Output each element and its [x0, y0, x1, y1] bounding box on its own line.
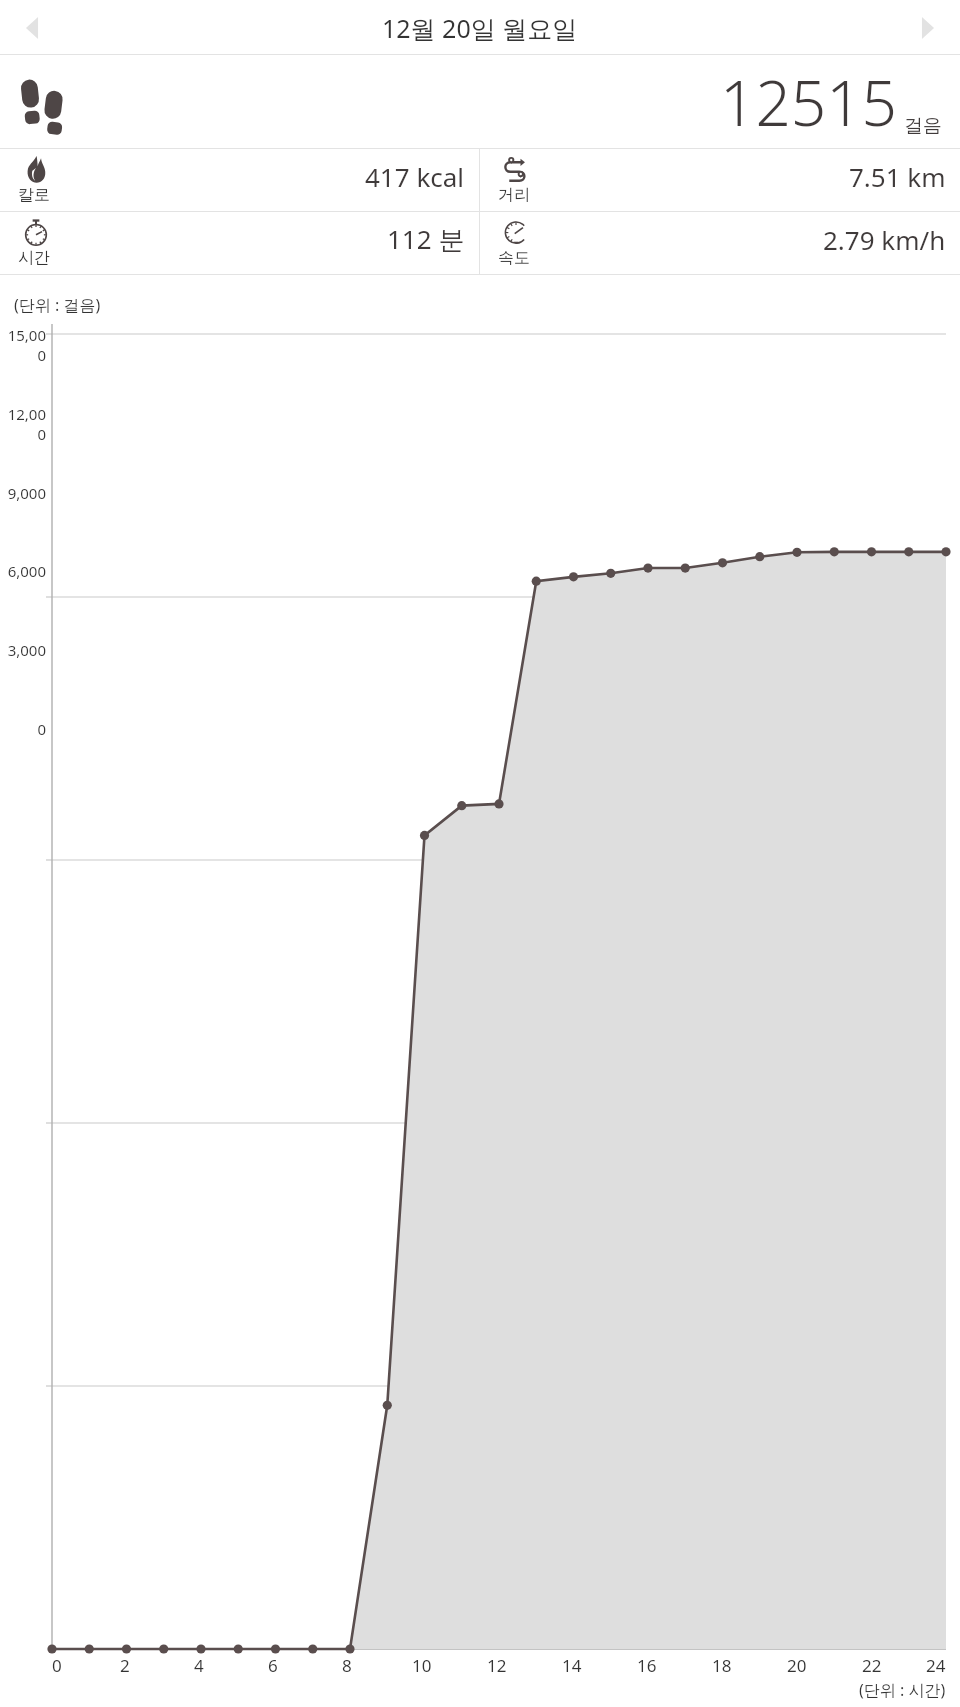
staticText: (단위 : 시간): [859, 1679, 946, 1701]
button[interactable]: 시간: [0, 212, 479, 274]
button[interactable]: Next day: [904, 4, 952, 52]
staticText: 15,000: [0, 325, 46, 365]
staticText: 10: [412, 1654, 432, 1677]
staticText: 시간: [18, 248, 50, 268]
staticText: 12,000: [0, 404, 46, 444]
staticText: 20: [787, 1654, 807, 1677]
staticText: 16: [637, 1654, 657, 1677]
staticText: 417 kcal: [365, 159, 465, 194]
staticText: 3,000: [0, 640, 46, 660]
staticText: 칼로: [18, 185, 50, 205]
staticText: 걸음: [904, 114, 942, 138]
staticText: 8: [342, 1654, 352, 1677]
staticText: 112 분: [387, 221, 465, 257]
staticText: 4: [194, 1654, 204, 1677]
staticText: 18: [712, 1654, 732, 1677]
staticText: 0: [0, 719, 46, 739]
staticText: 22: [862, 1654, 882, 1677]
staticText: (단위 : 걸음): [14, 294, 101, 316]
staticText: 7.51 km: [849, 159, 946, 194]
staticText: 12515: [720, 60, 898, 144]
button[interactable]: Previous day: [8, 4, 56, 52]
staticText: 2.79 km/h: [823, 222, 946, 257]
staticText: 12: [487, 1654, 507, 1677]
staticText: 12월 20일 월요일: [382, 11, 578, 45]
staticText: 거리: [498, 185, 530, 205]
button[interactable]: 12515: [0, 55, 960, 149]
staticText: 6,000: [0, 561, 46, 581]
staticText: 속도: [498, 248, 530, 268]
button[interactable]: 칼로: [0, 149, 479, 211]
staticText: 9,000: [0, 483, 46, 503]
button[interactable]: 거리: [480, 149, 960, 211]
staticText: 0: [52, 1654, 62, 1677]
staticText: 14: [562, 1654, 582, 1677]
staticText: 24: [926, 1654, 946, 1677]
staticText: 2: [120, 1654, 130, 1677]
button[interactable]: 속도: [480, 212, 960, 274]
staticText: 6: [268, 1654, 278, 1677]
